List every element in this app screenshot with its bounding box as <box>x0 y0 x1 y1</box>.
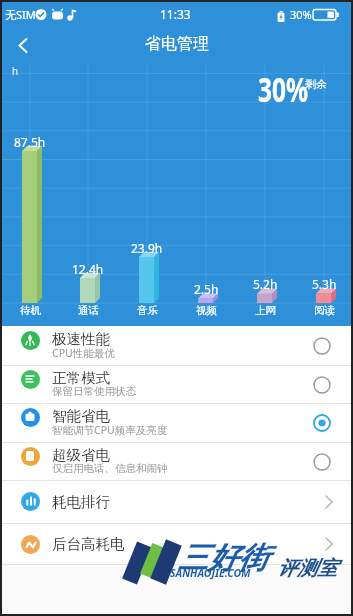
staticText: 三好街 <box>178 539 268 577</box>
staticText: SANHAOJIE.COM <box>170 566 251 580</box>
button[interactable]: 耗电排行 <box>0 480 353 523</box>
staticText: 5.2h <box>253 276 278 292</box>
staticText: 超级省电 <box>52 446 110 464</box>
staticText: 视频 <box>196 304 217 317</box>
staticText: 30% <box>290 7 312 22</box>
staticText: 省电管理 <box>145 34 209 54</box>
staticText: 智能调节CPU频率及亮度 <box>52 423 168 437</box>
staticText: 23.9h <box>131 240 163 256</box>
button[interactable]: 智能省电 <box>0 403 353 442</box>
staticText: 30% <box>258 66 308 112</box>
staticText: CPU性能最优 <box>52 346 115 360</box>
staticText: 极速性能 <box>52 330 110 348</box>
staticText: 待机 <box>20 304 41 317</box>
staticText: 音乐 <box>137 304 158 317</box>
staticText: 87.5h <box>14 134 46 150</box>
staticText: 耗电排行 <box>52 493 110 511</box>
staticText: 后台高耗电 <box>52 535 125 553</box>
staticText: 阅读 <box>314 304 335 317</box>
staticText: 11:33 <box>160 6 191 22</box>
staticText: 评测室 <box>277 556 337 581</box>
button[interactable]: 正常模式 <box>0 365 353 404</box>
staticText: 12.4h <box>72 261 104 277</box>
staticText: 5.3h <box>312 276 337 292</box>
staticText: h <box>12 64 19 78</box>
button[interactable]: 后台高耗电 <box>0 523 353 565</box>
staticText: 正常模式 <box>52 369 110 387</box>
staticText: 2.5h <box>194 281 219 297</box>
staticText: 通话 <box>78 304 99 317</box>
staticText: 上网 <box>255 304 276 317</box>
staticText: 智能省电 <box>52 407 110 425</box>
staticText: 保留日常使用状态 <box>52 385 136 398</box>
staticText: 仅启用电话、信息和闹钟 <box>52 462 168 475</box>
button[interactable] <box>17 38 29 53</box>
staticText: 无SIM <box>5 7 36 22</box>
staticText: 剩余 <box>305 77 327 91</box>
button[interactable]: 超级省电 <box>0 442 353 481</box>
button[interactable]: 极速性能 <box>0 326 353 365</box>
